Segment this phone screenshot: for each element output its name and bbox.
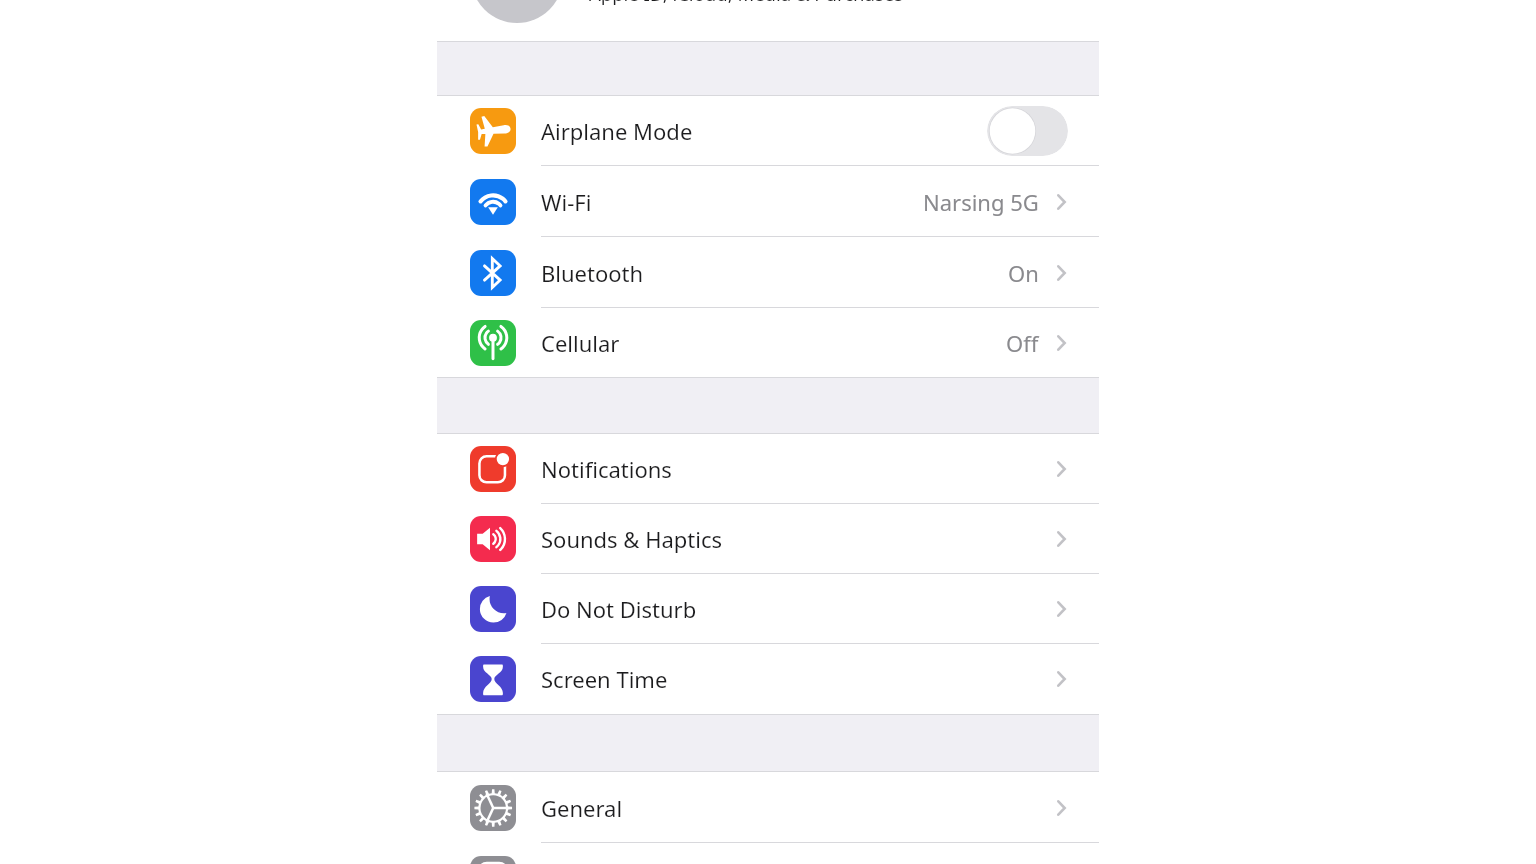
button[interactable]: Cellular: [0, 308, 1536, 377]
button[interactable]: Screen Time: [0, 644, 1536, 714]
button[interactable]: General: [0, 772, 1536, 843]
staticText: Narsing 5G: [923, 187, 1039, 217]
button[interactable]: Airplane Mode: [0, 96, 1536, 166]
staticText: Wi-Fi: [541, 187, 592, 217]
button[interactable]: Bluetooth: [0, 237, 1536, 308]
staticText: Airplane Mode: [541, 116, 693, 146]
button[interactable]: Airplane Mode switch, off: [987, 106, 1068, 156]
staticText: Sounds & Haptics: [541, 524, 723, 554]
staticText: Apple ID, iCloud, Media & Purchases: [589, 0, 904, 6]
staticText: On: [1008, 258, 1039, 288]
button[interactable]: Control Center: [0, 843, 1536, 864]
staticText: Bluetooth: [541, 258, 644, 288]
button[interactable]: Sounds & Haptics: [0, 504, 1536, 574]
button[interactable]: Apple ID, iCloud, Media & Purchases: [0, 0, 1536, 41]
button[interactable]: Wi-Fi: [0, 166, 1536, 237]
staticText: Off: [1006, 328, 1039, 358]
staticText: Screen Time: [541, 664, 668, 694]
staticText: General: [541, 793, 623, 823]
staticText: Do Not Disturb: [541, 594, 697, 624]
button[interactable]: Do Not Disturb: [0, 574, 1536, 644]
staticText: Cellular: [541, 328, 620, 358]
button[interactable]: Notifications: [0, 434, 1536, 504]
staticText: Notifications: [541, 454, 672, 484]
